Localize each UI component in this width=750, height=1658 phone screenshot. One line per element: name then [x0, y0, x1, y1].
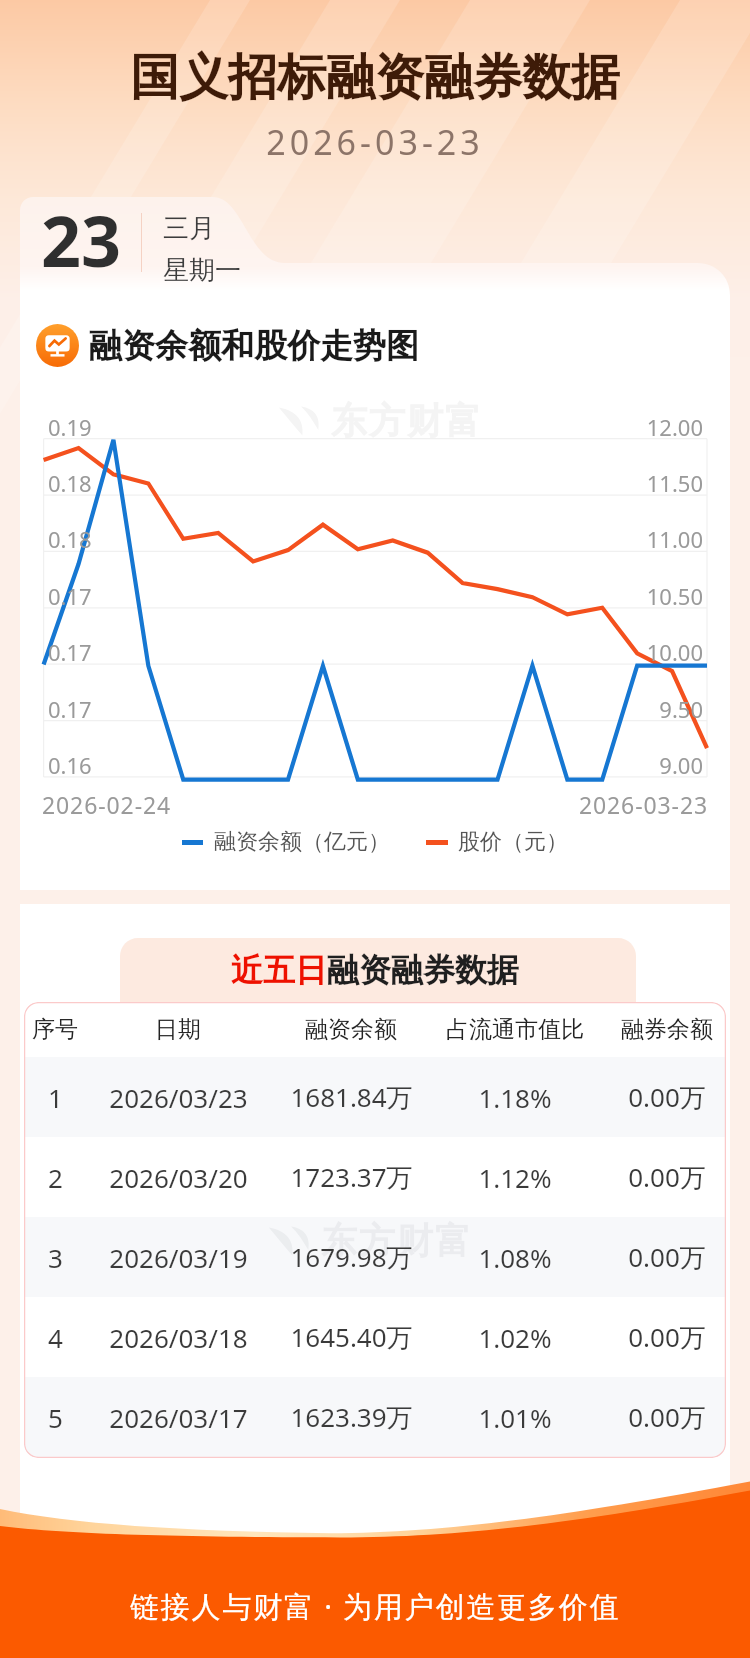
staticText: 近五日	[231, 950, 327, 990]
staticText: 0.19	[48, 412, 92, 442]
staticText: 2026/03/18	[109, 1320, 248, 1355]
staticText: 0.17	[48, 694, 92, 724]
staticText: 0.17	[48, 637, 92, 667]
staticText: 日期	[155, 1015, 201, 1044]
staticText: 1.08%	[478, 1240, 552, 1275]
staticText: 1.18%	[478, 1080, 552, 1115]
staticText: 10.50	[0, 581, 703, 611]
staticText: 股价（元）	[458, 828, 568, 856]
staticText: 2026/03/19	[109, 1240, 248, 1275]
staticText: 链接人与财富 · 为用户创造更多价值	[130, 1586, 621, 1626]
staticText: 1681.84万	[290, 1079, 413, 1115]
staticText: 2026-02-24	[42, 789, 172, 820]
staticText: 0.00万	[628, 1159, 706, 1195]
staticText: 1645.40万	[290, 1319, 413, 1355]
staticText: 2026/03/23	[109, 1080, 248, 1115]
staticText: 1.01%	[478, 1400, 552, 1435]
staticText: 0.00万	[628, 1399, 706, 1435]
staticText: 9.00	[0, 750, 703, 780]
staticText: 0.17	[48, 581, 92, 611]
staticText: 融资余额（亿元）	[214, 828, 390, 856]
staticText: 1723.37万	[290, 1159, 413, 1195]
button[interactable]: 5	[24, 1377, 726, 1457]
staticText: 10.00	[0, 637, 703, 667]
staticText: 0.00万	[628, 1239, 706, 1275]
staticText: 1.12%	[478, 1160, 552, 1195]
staticText: 2026/03/20	[109, 1160, 248, 1195]
staticText: 东方财富	[320, 1218, 472, 1263]
button[interactable]: 4	[24, 1297, 726, 1377]
staticText: 2026/03/17	[109, 1400, 248, 1435]
staticText: 融券余额	[621, 1015, 713, 1044]
staticText: 11.00	[0, 524, 703, 554]
staticText: 0.16	[48, 750, 92, 780]
other: 走势图	[36, 324, 79, 367]
staticText: 23	[41, 192, 122, 287]
staticText: 12.00	[0, 412, 703, 442]
staticText: 5	[48, 1400, 63, 1435]
button[interactable]: 3	[24, 1217, 726, 1297]
staticText: 占流通市值比	[446, 1015, 584, 1044]
staticText: 0.00万	[628, 1079, 706, 1115]
staticText: 东方财富	[330, 398, 482, 443]
staticText: 1623.39万	[290, 1399, 413, 1435]
staticText: 11.50	[0, 468, 703, 498]
staticText: 0.18	[48, 468, 92, 498]
button[interactable]: 2	[24, 1137, 726, 1217]
staticText: 2	[48, 1160, 63, 1195]
staticText: 2026-03-23	[266, 119, 484, 165]
staticText: 1.02%	[478, 1320, 552, 1355]
staticText: 0.00万	[628, 1319, 706, 1355]
staticText: 星期一	[163, 254, 241, 287]
button[interactable]: 走势图	[36, 324, 419, 367]
staticText: 序号	[32, 1015, 78, 1044]
staticText: 1	[48, 1080, 63, 1115]
staticText: 1679.98万	[290, 1239, 413, 1275]
staticText: 融资融券数据	[327, 950, 519, 990]
staticText: 三月	[163, 212, 215, 245]
staticText: 3	[48, 1240, 63, 1275]
staticText: 2026-03-23	[0, 789, 708, 820]
staticText: 0.18	[48, 524, 92, 554]
button[interactable]: 1	[24, 1057, 726, 1137]
staticText: 融资余额	[305, 1015, 397, 1044]
staticText: 融资余额和股价走势图	[89, 325, 419, 367]
staticText: 9.50	[0, 694, 703, 724]
staticText: 4	[48, 1320, 63, 1355]
staticText: 国义招标融资融券数据	[130, 47, 620, 109]
